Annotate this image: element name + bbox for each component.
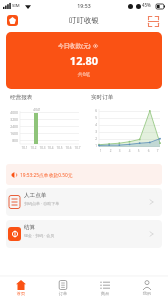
staticText: 人工点单 [24,192,47,199]
staticText: 4 [125,149,134,153]
staticText: 叮叮收银 [44,16,124,25]
button[interactable]: 结算 [6,220,162,248]
staticText: 5 [134,149,143,153]
staticText: 12.80 [6,53,162,68]
button[interactable]: 商品 [84,276,126,300]
staticText: 共6笔 [6,71,162,78]
other: App logo [7,15,18,26]
staticText: 结算 [24,224,36,231]
button[interactable]: Scan [146,14,160,28]
staticText: 扫码点单 · 自助下单 [24,201,60,206]
staticText: 10.3 [38,146,47,150]
staticText: 19:53 [64,2,104,9]
staticText: 2400 [2,124,18,129]
staticText: 10.1 [20,146,29,150]
staticText: 6 [85,109,97,113]
button[interactable]: 我的 [126,276,168,300]
staticText: 1600 [2,131,18,136]
staticText: 商品 [84,291,126,296]
staticText: 1 [85,144,97,148]
staticText: 4000 [2,110,18,115]
staticText: 现金 · 扫码 · 会员 [24,233,55,238]
button[interactable]: 订单 [42,276,84,300]
staticText: 我的 [126,291,168,296]
staticText: 订单 [42,291,84,296]
button[interactable]: 人工点单 [6,188,162,216]
staticText: 首页 [0,291,42,296]
staticText: 实时订单 [91,94,161,101]
button[interactable]: 首页 [0,276,42,300]
staticText: 6 [144,149,153,153]
staticText: 4041 [28,108,46,112]
staticText: 2 [85,137,97,141]
staticText: 经营报表 [10,94,80,101]
staticText: 3200 [2,117,18,122]
button[interactable] [6,32,162,89]
staticText: 19:53:25点单收款0.50元 [20,172,73,179]
staticText: 4 [85,123,97,127]
staticText: 1 [96,149,105,153]
staticText: 7 [153,149,162,153]
staticText: 10.4 [46,146,55,150]
button[interactable]: 19:53:25点单收款0.50元 [6,164,162,185]
staticText: 今日收款(元) [58,42,91,50]
staticText: 10.6 [64,146,73,150]
staticText: SIM [12,3,26,9]
staticText: 800 [2,138,18,143]
staticText: 2 [106,149,115,153]
staticText: 10.5 [55,146,64,150]
staticText: 3 [115,149,124,153]
staticText: 45% [142,2,156,8]
staticText: 5 [85,116,97,120]
staticText: 3 [85,130,97,134]
staticText: 10.2 [29,146,38,150]
staticText: 10.7 [73,146,82,150]
